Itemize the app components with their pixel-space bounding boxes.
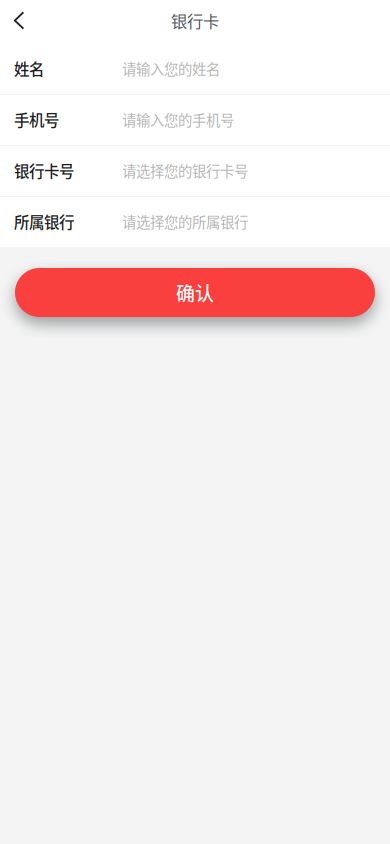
staticText: 银行卡号 xyxy=(14,159,74,182)
button[interactable]: Back xyxy=(0,0,46,43)
staticText: 手机号 xyxy=(14,108,59,131)
button[interactable]: 确认 xyxy=(15,268,375,317)
button[interactable]: 手机号 xyxy=(0,94,390,145)
button[interactable]: 银行卡号 xyxy=(0,145,390,196)
staticText: 请输入您的姓名 xyxy=(122,58,220,79)
staticText: 银行卡 xyxy=(171,9,219,32)
staticText: 请选择您的银行卡号 xyxy=(122,160,248,181)
staticText: 请选择您的所属银行 xyxy=(122,211,248,232)
staticText: 请输入您的手机号 xyxy=(122,109,234,130)
staticText: 所属银行 xyxy=(14,210,74,233)
staticText: 确认 xyxy=(176,279,214,306)
button[interactable]: 所属银行 xyxy=(0,196,390,247)
button[interactable]: 姓名 xyxy=(0,43,390,94)
staticText: 姓名 xyxy=(14,57,44,80)
